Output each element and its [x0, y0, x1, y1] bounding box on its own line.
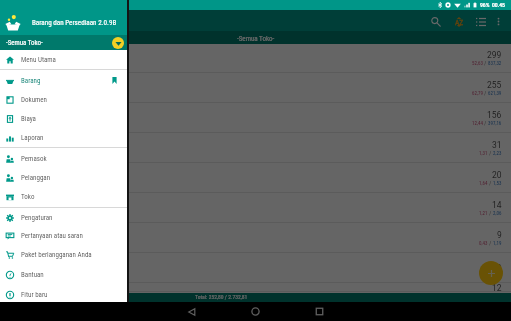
button[interactable]: 20: [0, 163, 511, 193]
staticText: Barang dan Persediaan 2.0.9B: [32, 18, 117, 26]
staticText: Laporan: [21, 134, 44, 142]
staticText: Bantuan: [21, 271, 44, 279]
staticText: /: [483, 120, 488, 126]
button[interactable]: Select store: [112, 37, 124, 49]
staticText: 12: [492, 283, 502, 292]
button[interactable]: 122: [0, 253, 511, 283]
staticText: AZ: [455, 18, 464, 27]
staticText: 0,43: [479, 240, 488, 246]
staticText: Paket berlangganan Anda: [21, 251, 92, 259]
button[interactable]: Back: [182, 302, 201, 321]
staticText: Toko: [21, 193, 35, 201]
staticText: 1,19: [493, 240, 502, 246]
button[interactable]: Home: [246, 302, 265, 321]
staticText: Biaya: [21, 115, 36, 123]
staticText: Total: 252,80 / 2.732,81: [195, 294, 248, 301]
staticText: 1,53: [493, 180, 502, 186]
button[interactable]: Toko: [0, 187, 127, 206]
staticText: -Semua Toko-: [6, 39, 43, 47]
staticText: 1,21: [479, 210, 488, 216]
button[interactable]: Menu Utama: [0, 50, 127, 69]
button[interactable]: 156: [0, 103, 511, 133]
staticText: 397,16: [488, 120, 502, 126]
button[interactable]: Add item: [479, 261, 503, 285]
staticText: /: [488, 240, 493, 246]
button[interactable]: Search: [428, 14, 444, 30]
staticText: Menu Utama: [21, 56, 56, 64]
staticText: 1,31: [479, 150, 488, 156]
button[interactable]: Pertanyaan atau saran: [0, 226, 127, 245]
button[interactable]: Biaya: [0, 109, 127, 128]
button[interactable]: More options: [491, 14, 506, 29]
staticText: Pertanyaan atau saran: [21, 232, 83, 240]
staticText: Fitur baru: [21, 291, 48, 299]
staticText: 299: [487, 50, 502, 60]
staticText: 2,23: [493, 150, 502, 156]
button[interactable]: 9: [0, 223, 511, 253]
staticText: /: [488, 150, 493, 156]
button[interactable]: Laporan: [0, 128, 127, 147]
button[interactable]: 299: [0, 43, 511, 73]
button[interactable]: Pengaturan: [0, 208, 127, 227]
button[interactable]: [0, 10, 511, 321]
staticText: 156: [487, 110, 502, 120]
staticText: 12,44: [472, 120, 483, 126]
button[interactable]: Pemasok: [0, 149, 127, 168]
staticText: 122: [487, 263, 502, 273]
staticText: 20: [492, 170, 502, 180]
button[interactable]: 31: [0, 133, 511, 163]
button[interactable]: 12: [0, 283, 511, 292]
staticText: 1,64: [479, 180, 488, 186]
staticText: 255: [487, 80, 502, 90]
staticText: /: [488, 210, 493, 216]
staticText: 9: [497, 230, 502, 240]
staticText: Dokumen: [21, 96, 47, 104]
staticText: Pelanggan: [21, 174, 51, 182]
staticText: 52,63: [472, 60, 483, 66]
staticText: /: [483, 60, 488, 66]
button[interactable]: Fitur baru: [0, 285, 127, 304]
staticText: 14: [492, 200, 502, 210]
staticText: 2,06: [493, 210, 502, 216]
staticText: Pemasok: [21, 155, 47, 163]
staticText: 62,79: [472, 90, 483, 96]
button[interactable]: Sort A to Z: [451, 14, 467, 30]
button[interactable]: Bantuan: [0, 265, 127, 284]
button[interactable]: Recent apps: [310, 302, 329, 321]
button[interactable]: 255: [0, 73, 511, 103]
staticText: Pengaturan: [21, 214, 53, 222]
button[interactable]: Change view: [473, 14, 489, 30]
staticText: 621,39: [488, 90, 502, 96]
button[interactable]: Paket berlangganan Anda: [0, 245, 127, 264]
button[interactable]: Barang: [0, 71, 127, 90]
staticText: /: [488, 180, 493, 186]
button[interactable]: Pelanggan: [0, 168, 127, 187]
staticText: /: [483, 90, 488, 96]
staticText: 00.45: [492, 2, 505, 9]
button[interactable]: 14: [0, 193, 511, 223]
button[interactable]: Dokumen: [0, 90, 127, 109]
staticText: -Semua Toko-: [237, 35, 275, 43]
staticText: 837,32: [488, 60, 502, 66]
staticText: Barang: [21, 77, 41, 85]
staticText: 31: [492, 140, 502, 150]
staticText: 96%: [480, 2, 490, 9]
